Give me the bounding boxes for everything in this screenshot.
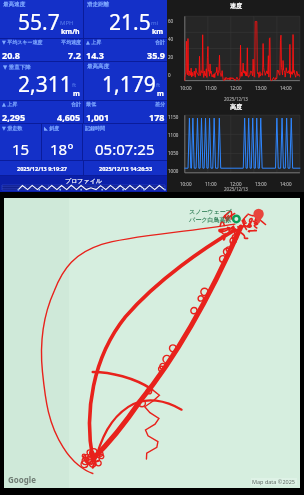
staticText: 12:00 <box>230 181 242 187</box>
staticText: km <box>152 27 164 37</box>
staticText: 2,311 <box>18 70 72 99</box>
staticText: 18° <box>50 139 74 159</box>
staticText: 14.3 <box>86 49 104 61</box>
staticText: 合計 <box>155 39 165 45</box>
staticText: 1150 <box>168 114 179 120</box>
staticText: 2025/12/13 <box>224 186 248 192</box>
staticText: 35.9 <box>147 49 165 61</box>
staticText: 2025/12/13 9:19:27 <box>17 165 67 172</box>
staticText: 最高高度 <box>87 63 109 70</box>
staticText: 0 <box>168 72 171 78</box>
staticText: ▲ 上昇 <box>86 39 102 46</box>
staticText: 1000 <box>168 168 179 174</box>
staticText: m <box>73 89 80 99</box>
staticText: Google <box>8 474 37 485</box>
staticText: 1,179 <box>102 70 156 99</box>
staticText: 1100 <box>168 132 179 138</box>
staticText: 11:00 <box>205 85 217 91</box>
button[interactable]: 高度 <box>167 96 304 192</box>
button[interactable]: 最高高度 <box>84 62 167 100</box>
staticText: 60 <box>168 18 174 24</box>
staticText: ▼ 垂直下降 <box>3 63 31 71</box>
staticText: 2025/12/13 14:26:53 <box>99 165 153 172</box>
staticText: 1050 <box>168 150 179 156</box>
staticText: 178 <box>149 111 165 123</box>
staticText: Map data ©2025 <box>252 478 296 485</box>
staticText: ft <box>156 81 161 89</box>
button[interactable]: 最高速度 <box>0 0 83 38</box>
staticText: 11:00 <box>205 181 217 187</box>
staticText: 14:00 <box>280 181 292 187</box>
staticText: 最低 <box>86 101 96 107</box>
staticText: 差分 <box>155 101 165 107</box>
staticText: 平均速度 <box>61 39 81 45</box>
other: Google <box>8 474 37 485</box>
staticText: ◣ 斜度 <box>44 125 60 132</box>
staticText: km/h <box>61 27 80 37</box>
staticText: m <box>157 89 164 99</box>
button[interactable]: 2025/12/13 14:26:53 <box>84 161 167 175</box>
button[interactable]: 2025/12/13 9:19:27 <box>0 161 83 175</box>
staticText: 合計 <box>71 101 81 107</box>
staticText: 13:00 <box>255 181 267 187</box>
button[interactable]: 最低 <box>84 101 167 123</box>
button[interactable]: 記録時間 <box>83 124 167 160</box>
staticText: 12:00 <box>230 85 242 91</box>
staticText: ▼ 平均スキー速度 <box>2 39 43 46</box>
staticText: 2,295 <box>2 111 26 123</box>
button[interactable]: ▲ 上昇 <box>0 101 83 123</box>
staticText: ▼ 滑走数 <box>2 125 23 132</box>
staticText: プロファイル <box>0 177 167 185</box>
staticText: 20.8 <box>2 49 20 61</box>
staticText: 滑走距離 <box>87 1 109 8</box>
staticText: スノーウェーブ パーク白鳥高原 <box>189 208 232 224</box>
button[interactable]: 滑走距離 <box>84 0 167 38</box>
staticText: MPH <box>60 19 74 27</box>
button[interactable]: スノーウェーブ パーク白鳥高原 <box>4 198 300 488</box>
staticText: 05:07:25 <box>95 139 155 159</box>
staticText: 20 <box>168 54 174 60</box>
staticText: mi <box>151 19 159 27</box>
button[interactable]: 速度 <box>167 0 304 96</box>
button[interactable]: ◣ 斜度 <box>42 124 82 160</box>
button[interactable]: ▼ 平均スキー速度 <box>0 39 83 61</box>
staticText: 10:00 <box>180 85 192 91</box>
staticText: 速度 <box>230 2 242 10</box>
staticText: ft <box>72 81 77 89</box>
button[interactable]: ▼ 滑走数 <box>0 124 41 160</box>
staticText: 14:00 <box>280 85 292 91</box>
staticText: ▲ 上昇 <box>2 101 18 108</box>
staticText: 7.2 <box>68 49 81 61</box>
staticText: 4,605 <box>57 111 81 123</box>
staticText: 高度 <box>230 103 242 111</box>
staticText: 1,001 <box>86 111 110 123</box>
staticText: 21.5 <box>109 8 151 37</box>
button[interactable]: ▼ 垂直下降 <box>0 62 83 100</box>
staticText: 55.7 <box>18 8 60 37</box>
button[interactable]: ▲ 上昇 <box>84 39 167 61</box>
staticText: 記録時間 <box>85 125 105 131</box>
staticText: 15 <box>12 139 30 159</box>
staticText: 2025/12/13 <box>224 96 248 102</box>
staticText: 10:00 <box>180 181 192 187</box>
staticText: 40 <box>168 36 174 42</box>
staticText: 13:00 <box>255 85 267 91</box>
staticText: 最高速度 <box>3 1 25 8</box>
